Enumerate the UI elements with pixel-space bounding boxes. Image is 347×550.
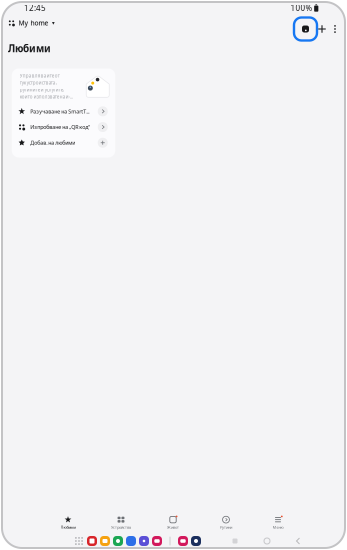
staticText: Любими <box>60 524 75 530</box>
button[interactable]: App <box>150 534 163 547</box>
button[interactable]: App <box>111 534 124 547</box>
staticText: Управлявайте от <box>20 73 60 79</box>
button[interactable]: Рутини <box>203 515 249 531</box>
button[interactable]: Добав. на любими <box>12 135 115 151</box>
button[interactable]: More options <box>328 19 342 39</box>
button[interactable]: Устройства <box>98 515 144 531</box>
button[interactable]: Add device <box>314 19 330 39</box>
staticText: тук устройствата, <box>20 80 57 86</box>
button[interactable]: Любими <box>45 515 91 531</box>
button[interactable]: App <box>85 534 98 547</box>
button[interactable]: Меню <box>255 515 301 531</box>
staticText: Устройства <box>111 524 131 530</box>
button[interactable]: Apps <box>72 534 85 547</box>
staticText: рутините и услугите, <box>20 87 64 93</box>
staticText: Рутини <box>220 524 232 530</box>
staticText: Разучаване на SmartT... <box>30 108 89 115</box>
button[interactable]: Home <box>258 534 276 548</box>
button[interactable]: Map view <box>294 17 317 40</box>
staticText: Добав. на любими <box>30 139 75 146</box>
button[interactable]: Back <box>289 534 307 548</box>
button[interactable]: Изпробване на „QR код“ <box>12 119 115 135</box>
staticText: Любими <box>8 42 51 55</box>
staticText: Изпробване на „QR код“ <box>30 123 90 131</box>
button[interactable]: Живот <box>150 515 196 531</box>
staticText: Живот <box>167 524 179 530</box>
button[interactable]: Разучаване на SmartT... <box>12 103 115 119</box>
button[interactable]: App <box>189 534 202 547</box>
button[interactable]: My home <box>2 16 61 30</box>
button[interactable]: Recent apps <box>226 534 244 548</box>
staticText: Меню <box>272 524 283 530</box>
staticText: които използвате най-... <box>20 94 73 100</box>
staticText: ▾ <box>52 20 55 26</box>
staticText: 100% <box>291 3 313 13</box>
button[interactable]: App <box>124 534 137 547</box>
button[interactable]: App <box>176 534 189 547</box>
staticText: My home <box>18 19 48 27</box>
staticText: 12:45 <box>24 3 46 13</box>
button[interactable]: App <box>98 534 111 547</box>
button[interactable]: App <box>137 534 150 547</box>
